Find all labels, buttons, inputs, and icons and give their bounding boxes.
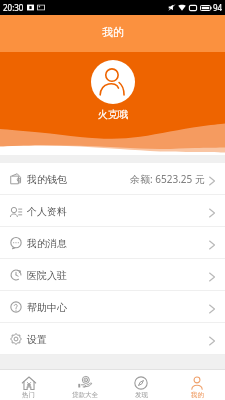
button[interactable]: 帮助中心 — [0, 291, 225, 323]
button[interactable]: 我的钱包 — [0, 163, 225, 195]
button[interactable]: 我的 — [169, 372, 225, 399]
staticText: 火克哦 — [98, 108, 128, 121]
button[interactable]: 热门 — [0, 372, 57, 399]
staticText: 我的 — [191, 391, 204, 399]
staticText: 我的钱包 — [27, 173, 67, 186]
staticText: 帮助中心 — [27, 301, 67, 314]
staticText: 发现 — [135, 391, 148, 399]
button[interactable]: 个人资料 — [0, 195, 225, 227]
staticText: 我的 — [102, 25, 124, 39]
button[interactable]: 发现 — [113, 372, 169, 399]
staticText: 20:30 — [3, 2, 24, 13]
staticText: 94 — [213, 2, 223, 13]
staticText: 个人资料 — [27, 205, 67, 218]
staticText: 我的消息 — [27, 237, 67, 250]
staticText: 贷款大全 — [72, 391, 98, 399]
staticText: 医院入驻 — [27, 269, 67, 282]
button[interactable]: 贷款大全 — [57, 372, 113, 399]
staticText: 热门 — [22, 391, 35, 399]
staticText: 余额: 6523.25 元 — [130, 172, 205, 186]
staticText: 设置 — [27, 333, 47, 346]
button[interactable]: 我的消息 — [0, 227, 225, 259]
button[interactable]: 设置 — [0, 323, 225, 355]
button[interactable]: 医院入驻 — [0, 259, 225, 291]
